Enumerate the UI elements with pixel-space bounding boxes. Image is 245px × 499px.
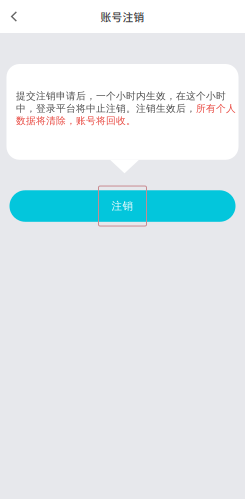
staticText: 提交注销申请后，一个小时内生效，在这个小时 中，登录平台将中止注销。注销生效后，… [16, 90, 236, 127]
button[interactable]: 注销 [9, 190, 235, 222]
staticText: 注销 [111, 199, 133, 213]
staticText: 账号注销 [100, 9, 144, 24]
button[interactable]: Back [0, 0, 28, 33]
